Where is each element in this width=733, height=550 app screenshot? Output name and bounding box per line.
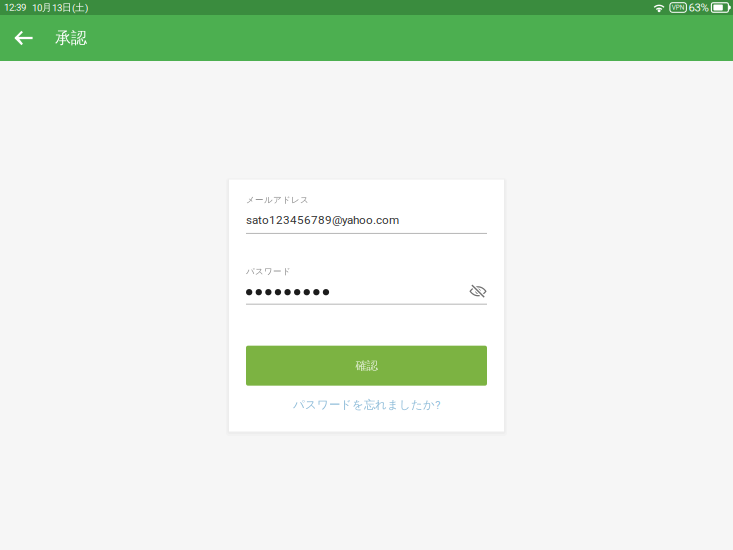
staticText: VPN: [672, 4, 685, 11]
staticText: パスワードを忘れましたか?: [293, 397, 440, 412]
button[interactable]: パスワード: [246, 266, 487, 299]
button[interactable]: Show password: [469, 283, 487, 300]
staticText: パスワード: [246, 266, 291, 277]
staticText: 確認: [355, 358, 377, 373]
staticText: 承認: [55, 28, 87, 48]
staticText: 12:39: [4, 2, 26, 13]
button[interactable]: パスワードを忘れましたか?: [246, 396, 487, 414]
staticText: メールアドレス: [246, 194, 309, 205]
staticText: 63%: [688, 1, 708, 14]
staticText: sato123456789@yahoo.com: [246, 213, 399, 227]
button[interactable]: メールアドレス: [246, 194, 487, 234]
button[interactable]: Back: [7, 15, 40, 61]
staticText: 10月13日(土): [32, 1, 88, 14]
button[interactable]: 確認: [246, 346, 487, 386]
